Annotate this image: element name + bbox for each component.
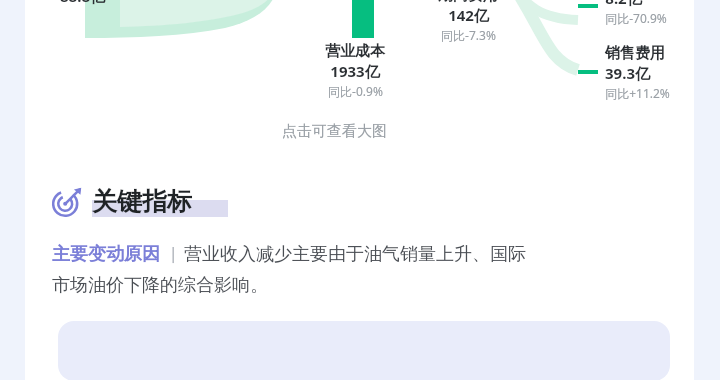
staticText: 营业收入减少主要由于油气销量上升、国际 (184, 243, 526, 266)
staticText: 39.3亿 (605, 63, 650, 83)
staticText: 期间费用 (438, 0, 498, 5)
button[interactable]: 点击可查看大图 (25, 122, 694, 141)
button[interactable]: 关键指标 (52, 186, 228, 217)
staticText: 1933亿 (330, 61, 380, 81)
staticText: 市场油价下降的综合影响。 (52, 274, 268, 297)
staticText: 丨 (165, 245, 182, 266)
staticText: 销售费用 (605, 44, 665, 63)
staticText: 8.2亿 (605, 0, 642, 8)
staticText: 点击可查看大图 (282, 122, 387, 141)
staticText: 142亿 (448, 5, 489, 25)
staticText: 同比+11.2% (605, 85, 670, 101)
staticText: 同比-0.9% (328, 83, 383, 99)
staticText: 营业成本 (325, 42, 385, 61)
other: 关键指标 (52, 187, 82, 217)
staticText: 关键指标 (92, 186, 192, 217)
staticText: 同比-7.3% (441, 27, 496, 43)
staticText: 同比-70.9% (605, 10, 667, 26)
staticText: 主要变动原因 (52, 243, 160, 266)
staticText: 88.8亿 (60, 0, 105, 6)
